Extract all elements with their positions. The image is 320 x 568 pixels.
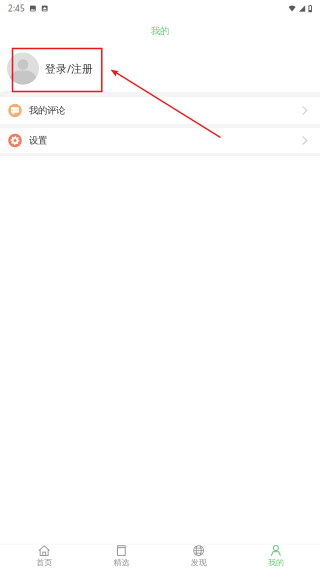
button[interactable]: 设置 (0, 128, 320, 153)
staticText: 精选 (113, 558, 129, 567)
button[interactable]: 精选 (83, 544, 160, 568)
button[interactable]: 我的评论 (0, 97, 320, 124)
staticText: 发现 (191, 558, 207, 567)
button[interactable]: 我的 (237, 544, 314, 568)
button[interactable]: 我的 (0, 17, 320, 45)
staticText: 设置 (29, 135, 47, 146)
staticText: 登录/注册 (45, 61, 93, 76)
button[interactable]: 首页 (5, 544, 83, 568)
button[interactable]: 发现 (160, 544, 237, 568)
staticText: 我的 (151, 25, 169, 37)
staticText: 我的 (268, 558, 284, 567)
staticText: 2:45 (8, 3, 25, 14)
staticText: 我的评论 (29, 105, 65, 116)
button[interactable]: 登录/注册 (0, 45, 320, 92)
staticText: 首页 (36, 558, 52, 567)
